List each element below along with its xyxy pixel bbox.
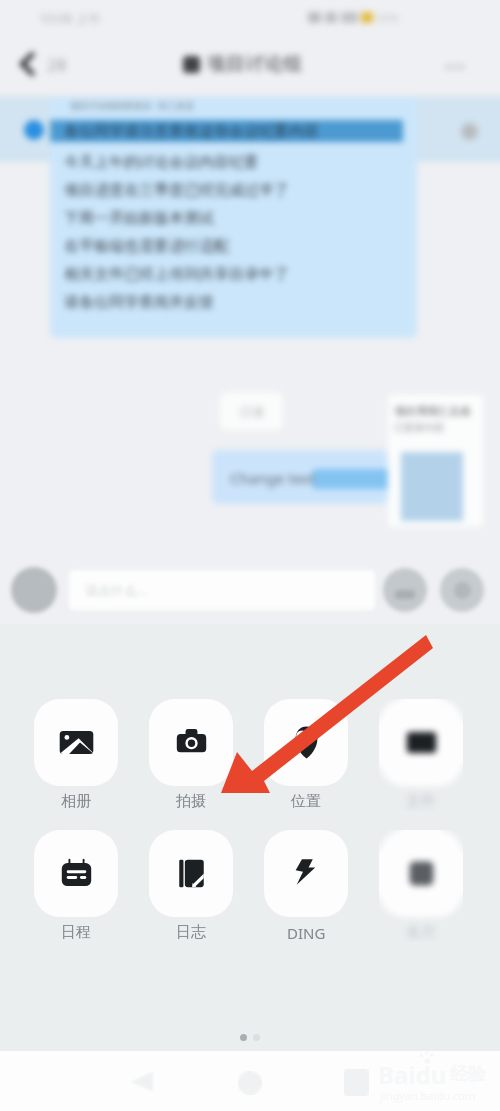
staticText: 文件: [406, 792, 436, 811]
button[interactable]: Back: [14, 46, 73, 82]
staticText: 已读: [240, 404, 264, 419]
button[interactable]: 文件: [379, 699, 463, 811]
staticText: 位置: [291, 792, 321, 811]
staticText: 65%: [377, 10, 399, 25]
staticText: 下周一开始新版本测试: [64, 209, 214, 228]
staticText: 名片: [406, 923, 436, 942]
staticText: 请各位同学查阅并反馈: [64, 293, 214, 312]
button[interactable]: DING: [264, 830, 348, 943]
staticText: 已更新内容: [394, 421, 444, 434]
staticText: 项目进度在三季度已经完成过半了: [64, 181, 289, 200]
button[interactable]: 位置: [264, 699, 348, 811]
button[interactable]: Back: [118, 1057, 166, 1105]
button[interactable]: 日程: [34, 830, 118, 942]
staticText: 日程: [61, 923, 91, 942]
staticText: 项目讨论组: [207, 52, 302, 76]
staticText: 各位同学请注意查收这份会议纪要内容: [64, 122, 319, 141]
staticText: 相关文件已经上传到共享目录中了: [64, 265, 289, 284]
button[interactable]: 相册: [34, 699, 118, 811]
button[interactable]: More options: [438, 50, 472, 84]
staticText: 拍摄: [176, 792, 206, 811]
button[interactable]: 名片: [379, 830, 463, 942]
staticText: 项目讨论组的群成员 · 张三发送: [70, 99, 195, 111]
staticText: DING: [287, 923, 326, 943]
button[interactable]: Recent apps: [332, 1058, 380, 1106]
staticText: 在平板端也需要进行适配: [64, 237, 229, 256]
staticText: 经验: [450, 1063, 486, 1086]
staticText: 今天上午的讨论会议内容纪要: [64, 153, 259, 172]
staticText: 相册: [61, 792, 91, 811]
staticText: 说点什么…: [85, 581, 148, 599]
staticText: 28: [47, 53, 67, 76]
button[interactable]: Home: [226, 1059, 274, 1107]
button[interactable]: 拍摄: [149, 699, 233, 811]
button[interactable]: 日志: [149, 830, 233, 942]
staticText: 日志: [176, 923, 206, 942]
button[interactable]: More options: [440, 568, 484, 612]
staticText: 10:08 上午: [39, 9, 102, 27]
button[interactable]: Voice message: [11, 567, 57, 613]
button[interactable]: Emoji: [383, 568, 427, 612]
staticText: 项目周报汇总表: [394, 404, 471, 418]
staticText: Change text: [230, 468, 315, 488]
